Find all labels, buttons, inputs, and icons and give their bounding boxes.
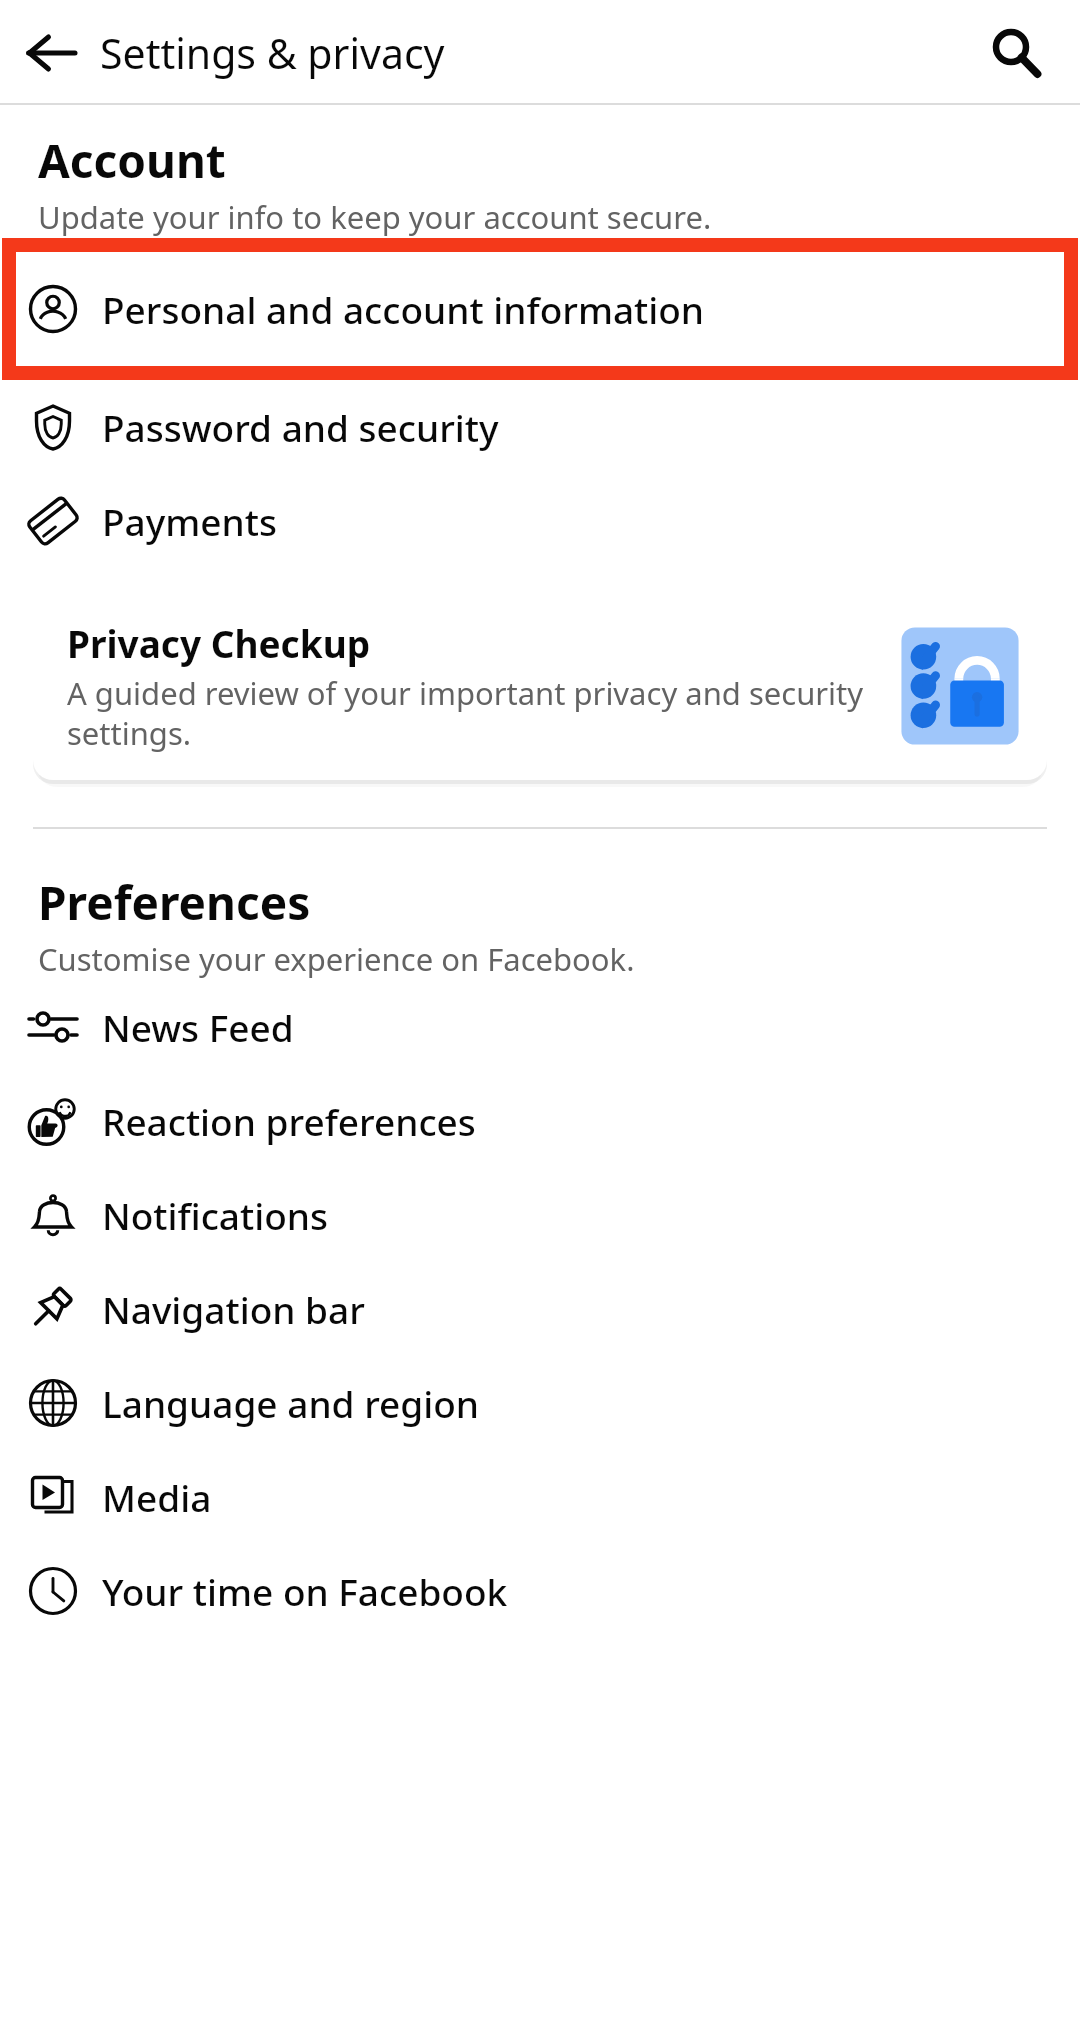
button[interactable]: Payments [0,474,1080,568]
staticText: A guided review of your important privac… [67,672,893,754]
button[interactable]: Navigation bar [0,1262,1080,1356]
button[interactable]: Search [972,10,1058,96]
button[interactable]: Password and security [0,380,1080,474]
button[interactable]: Privacy Checkup [33,592,1047,780]
staticText: Your time on Facebook [102,1566,508,1616]
staticText: Settings & privacy [100,25,445,81]
button[interactable]: Reaction preferences [0,1074,1080,1168]
staticText: News Feed [102,1002,294,1052]
button[interactable]: Personal and account information [16,252,1064,366]
button[interactable]: Your time on Facebook [0,1544,1080,1638]
staticText: Notifications [102,1190,328,1240]
staticText: Customise your experience on Facebook. [38,938,635,980]
staticText: Update your info to keep your account se… [38,196,712,238]
staticText: Language and region [102,1378,480,1428]
staticText: Media [102,1472,212,1522]
button[interactable]: Notifications [0,1168,1080,1262]
staticText: Preferences [38,871,311,934]
staticText: Password and security [102,402,499,452]
button[interactable]: News Feed [0,980,1080,1074]
staticText: Personal and account information [102,284,705,334]
button[interactable]: Media [0,1450,1080,1544]
staticText: Navigation bar [102,1284,365,1334]
staticText: Account [38,129,226,192]
staticText: Reaction preferences [102,1096,476,1146]
button[interactable]: Back [10,12,92,94]
staticText: Payments [102,496,277,546]
staticText: Privacy Checkup [67,618,371,668]
button[interactable]: Language and region [0,1356,1080,1450]
